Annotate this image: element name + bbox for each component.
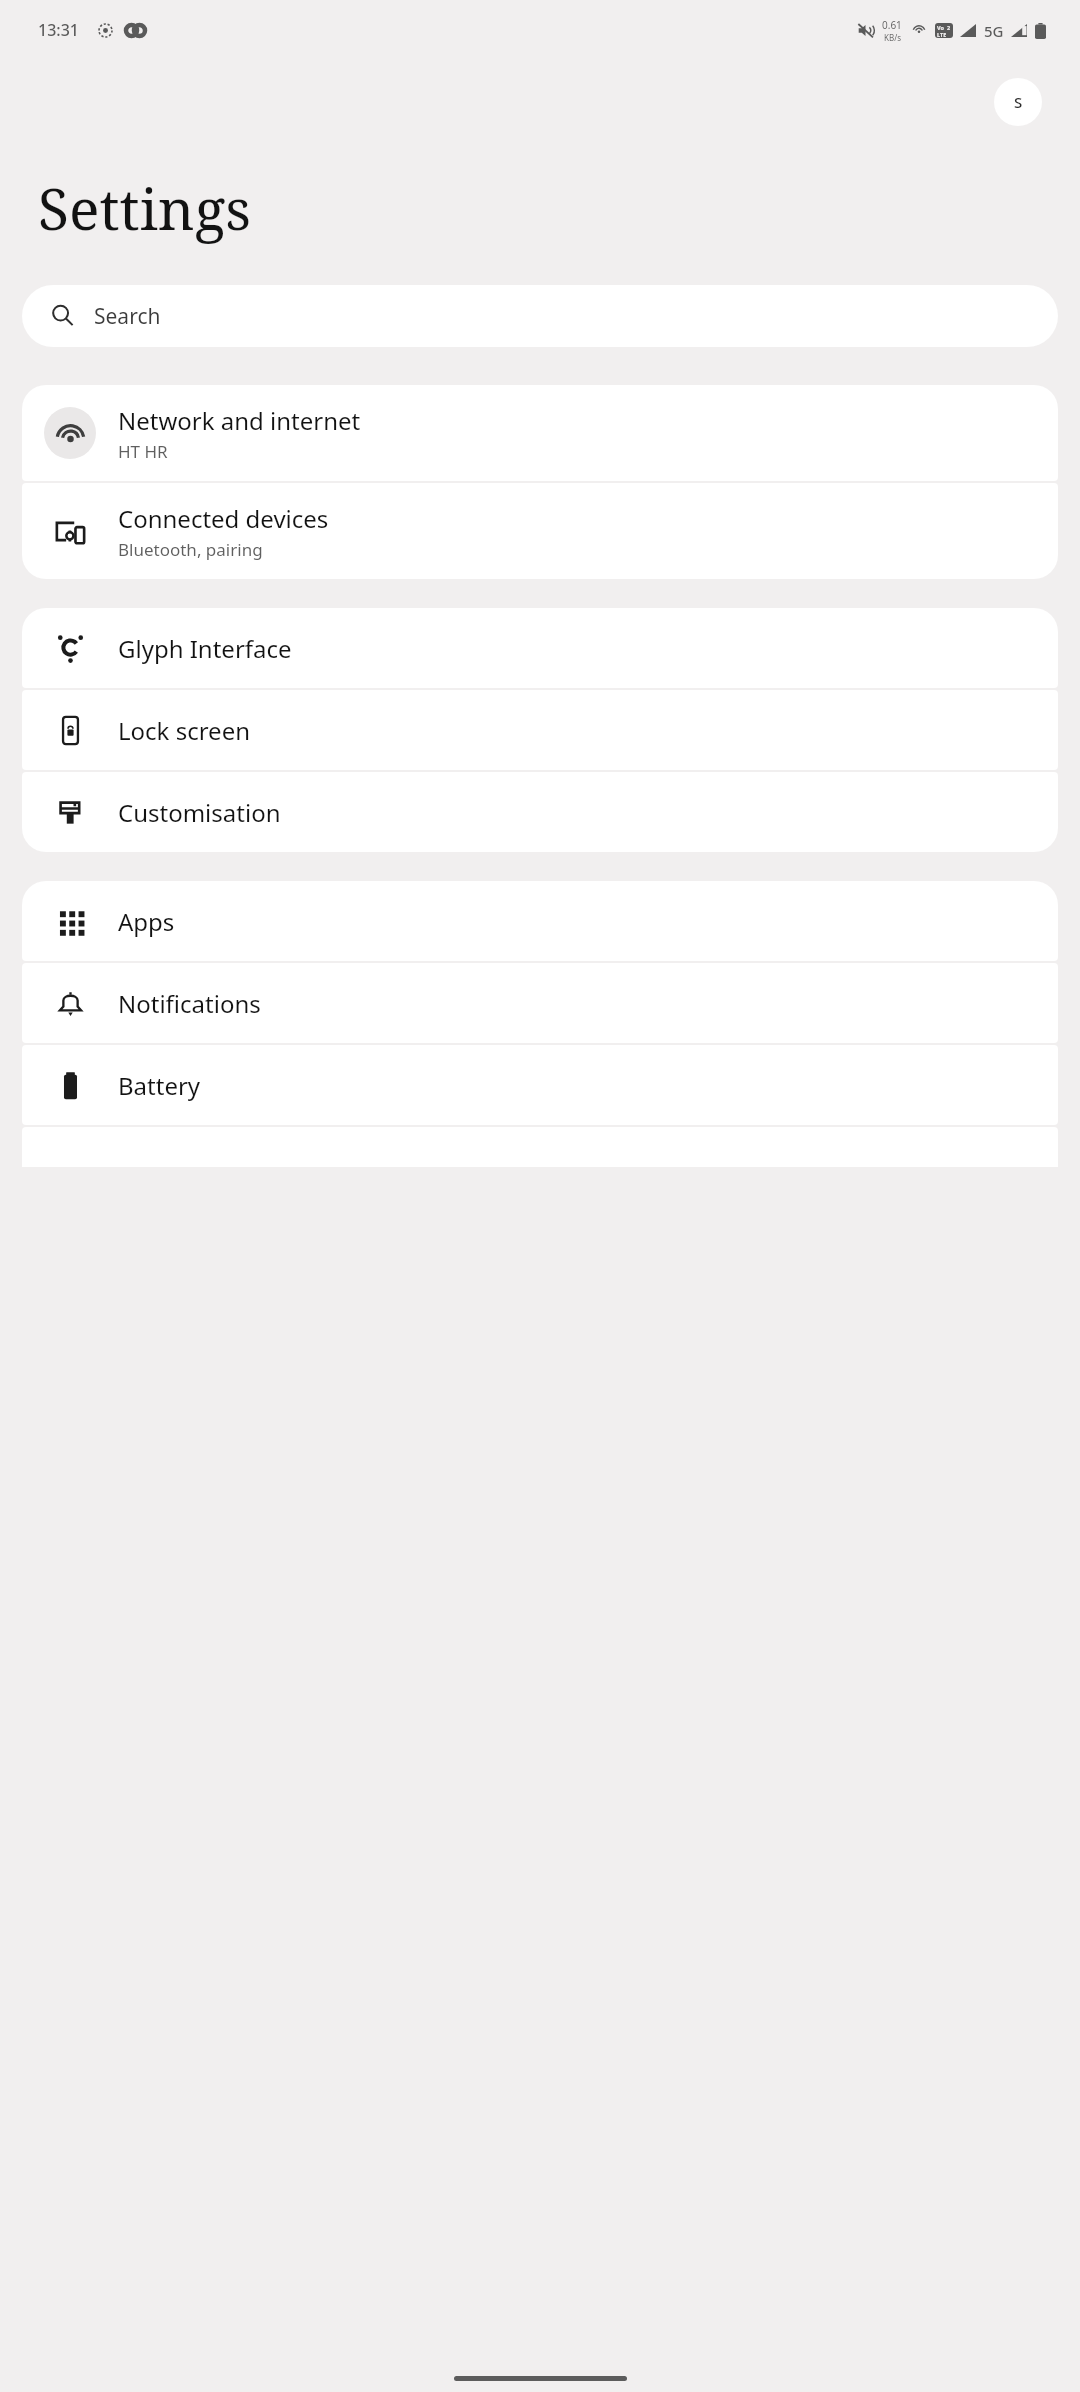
staticText: S <box>1014 92 1023 112</box>
button[interactable]: Battery <box>22 1045 1058 1125</box>
button[interactable]: Apps <box>22 881 1058 961</box>
staticText: 13:31 <box>38 19 79 41</box>
staticText: 2 <box>947 24 951 31</box>
button[interactable]: Connected devices <box>22 483 1058 579</box>
button[interactable]: Glyph Interface <box>22 608 1058 688</box>
staticText: KB/s <box>884 32 901 43</box>
staticText: Search <box>94 302 161 331</box>
staticText: Connected devices <box>118 502 329 535</box>
button[interactable]: Notifications <box>22 963 1058 1043</box>
staticText: Network and internet <box>118 404 361 437</box>
staticText: Glyph Interface <box>118 632 292 665</box>
staticText: Apps <box>118 905 175 938</box>
staticText: LTE <box>937 31 951 37</box>
button[interactable]: Account <box>994 78 1042 126</box>
button[interactable]: Search <box>22 285 1058 347</box>
staticText: Bluetooth, pairing <box>118 538 263 561</box>
button[interactable]: Network and internet <box>22 385 1058 481</box>
staticText: Vo <box>937 24 944 31</box>
staticText: Battery <box>118 1069 201 1102</box>
staticText: 5G <box>984 21 1004 41</box>
staticText: HT HR <box>118 440 168 463</box>
staticText: Settings <box>38 169 252 247</box>
staticText: Customisation <box>118 796 281 829</box>
staticText: 0.61 <box>882 18 902 32</box>
staticText: Notifications <box>118 987 261 1020</box>
button[interactable]: Customisation <box>22 772 1058 852</box>
button[interactable]: Lock screen <box>22 690 1058 770</box>
staticText: Lock screen <box>118 714 251 747</box>
